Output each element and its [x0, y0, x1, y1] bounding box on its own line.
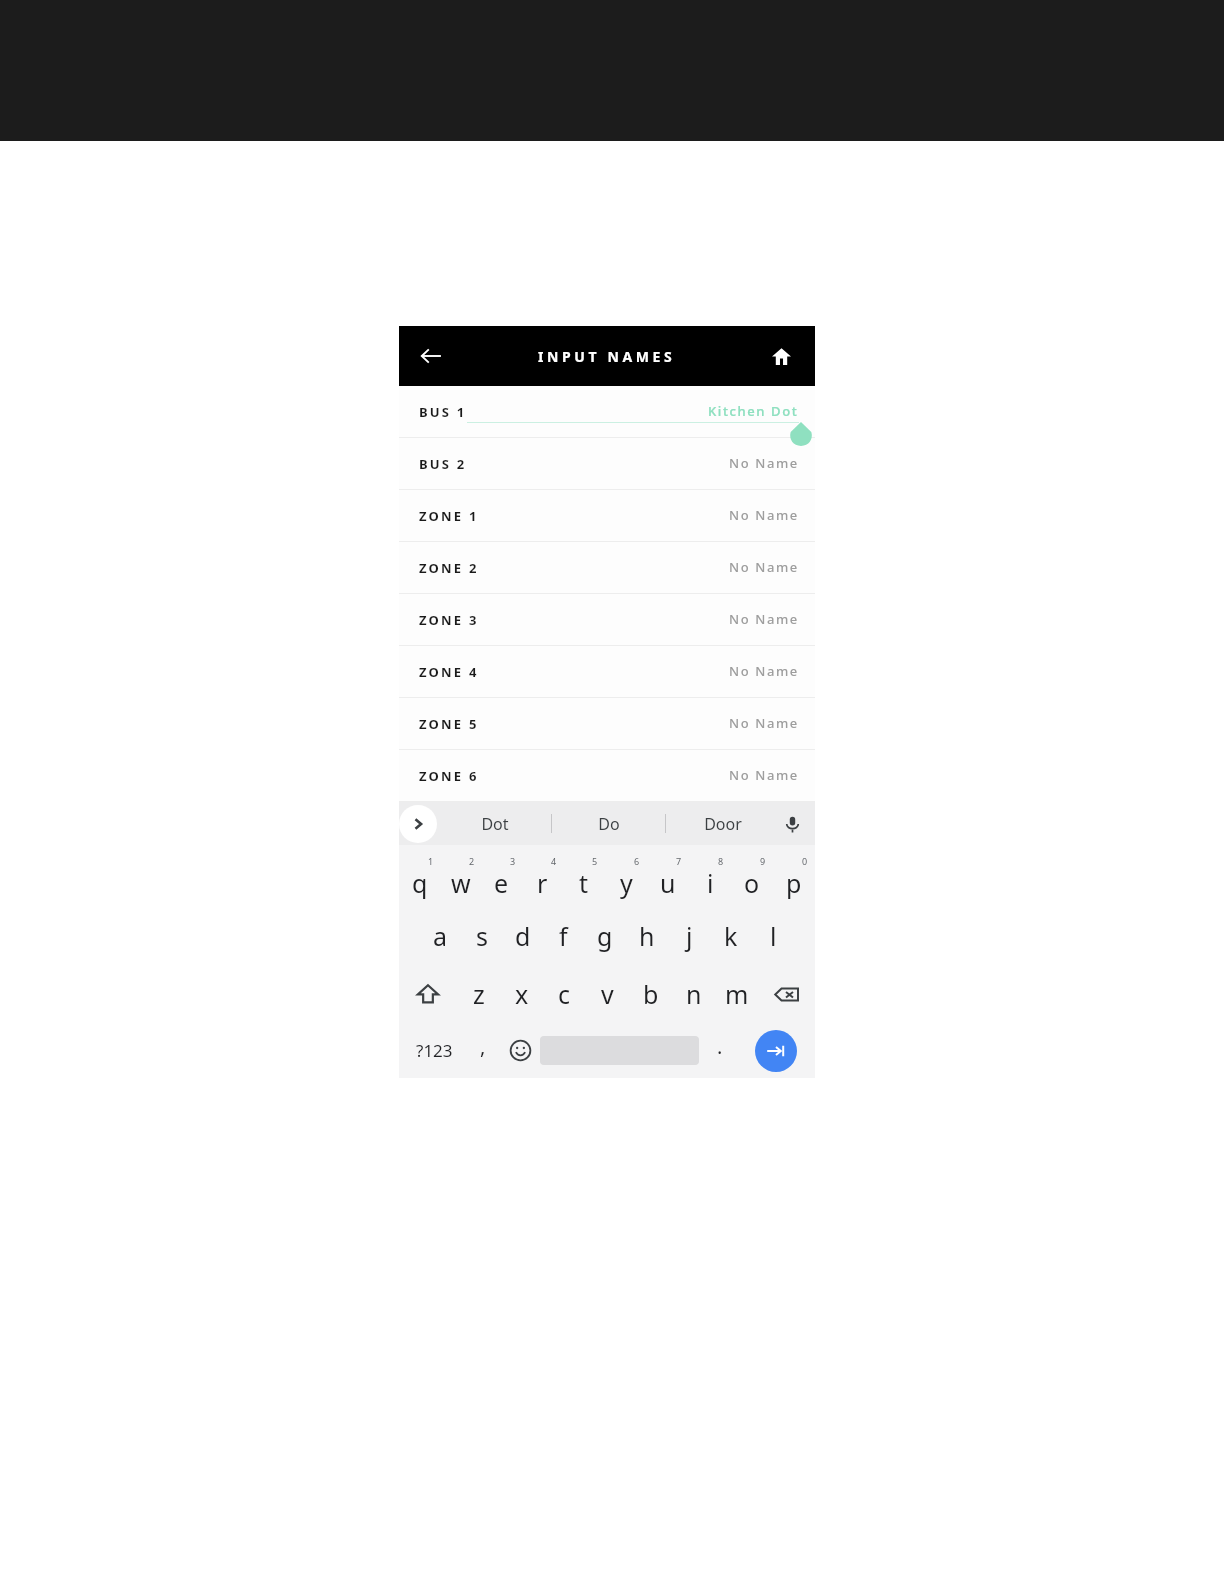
staticText: b [643, 977, 659, 1011]
staticText: ZONE 2 [419, 559, 479, 577]
staticText: k [724, 919, 738, 953]
staticText: ZONE 1 [419, 507, 479, 525]
button[interactable]: ZONE 4 [399, 646, 815, 698]
staticText: m [725, 977, 749, 1011]
staticText: 8 [718, 855, 724, 867]
button[interactable]: Dot [439, 802, 551, 845]
button[interactable]: 5 [563, 851, 605, 907]
staticText: s [476, 919, 488, 953]
staticText: Door [704, 813, 742, 835]
staticText: 4 [551, 855, 557, 867]
staticText: r [537, 866, 548, 900]
button[interactable]: ZONE 6 [399, 750, 815, 802]
staticText: No Name [729, 454, 799, 472]
button[interactable]: . [699, 1023, 741, 1078]
button[interactable]: b [629, 965, 672, 1023]
staticText: BUS 1 [419, 403, 467, 421]
staticText: l [770, 919, 777, 953]
staticText: 7 [676, 855, 682, 867]
button[interactable]: 3 [481, 851, 522, 907]
staticText: BUS 2 [419, 455, 467, 473]
staticText: c [558, 977, 571, 1011]
staticText: No Name [729, 558, 799, 576]
staticText: 3 [510, 855, 516, 867]
button[interactable]: s [461, 907, 502, 965]
button[interactable]: ?123 [403, 1023, 465, 1078]
staticText: p [786, 866, 802, 900]
button[interactable]: 4 [522, 851, 563, 907]
button[interactable]: , [465, 1023, 500, 1078]
staticText: Dot [481, 813, 509, 835]
button[interactable]: n [672, 965, 715, 1023]
button[interactable]: ZONE 2 [399, 542, 815, 594]
staticText: h [639, 919, 655, 953]
button[interactable]: ZONE 5 [399, 698, 815, 750]
staticText: z [473, 977, 485, 1011]
button[interactable]: c [543, 965, 586, 1023]
staticText: No Name [729, 766, 799, 784]
staticText: e [494, 866, 509, 900]
staticText: 2 [469, 855, 475, 867]
staticText: y [620, 866, 633, 900]
button[interactable]: ZONE 1 [399, 490, 815, 542]
button[interactable]: v [586, 965, 629, 1023]
button[interactable]: d [502, 907, 543, 965]
button[interactable]: g [584, 907, 626, 965]
button[interactable]: h [626, 907, 668, 965]
staticText: w [451, 866, 471, 900]
staticText: No Name [729, 662, 799, 680]
staticText: ZONE 4 [419, 663, 479, 681]
staticText: j [686, 919, 693, 953]
staticText: No Name [729, 714, 799, 732]
staticText: 0 [802, 855, 808, 867]
button[interactable]: Do [552, 802, 665, 845]
button[interactable]: Back [409, 334, 453, 378]
button[interactable]: f [543, 907, 584, 965]
staticText: i [707, 866, 714, 900]
button[interactable]: More suggestions [399, 805, 437, 843]
button[interactable]: BUS 1 [399, 386, 815, 438]
button[interactable]: l [752, 907, 794, 965]
button[interactable]: a [420, 907, 461, 965]
staticText: f [559, 919, 568, 953]
button[interactable]: 9 [731, 851, 773, 907]
button[interactable]: 8 [689, 851, 731, 907]
staticText: x [515, 977, 529, 1011]
staticText: 5 [592, 855, 598, 867]
button[interactable]: 0 [773, 851, 815, 907]
button[interactable]: 6 [605, 851, 647, 907]
button[interactable]: 7 [647, 851, 689, 907]
button[interactable]: z [457, 965, 500, 1023]
button[interactable]: m [715, 965, 758, 1023]
button[interactable]: Voice input [775, 807, 809, 841]
staticText: , [480, 1033, 486, 1060]
staticText: No Name [729, 506, 799, 524]
button[interactable]: k [710, 907, 752, 965]
button[interactable]: j [668, 907, 710, 965]
staticText: . [717, 1033, 723, 1060]
button[interactable]: BUS 2 [399, 438, 815, 490]
staticText: o [744, 866, 760, 900]
button[interactable]: 1 [399, 851, 440, 907]
button[interactable]: 2 [440, 851, 481, 907]
button[interactable]: Emoji [500, 1023, 540, 1078]
staticText: d [515, 919, 531, 953]
staticText: q [412, 866, 428, 900]
staticText: ZONE 3 [419, 611, 479, 629]
staticText: 9 [760, 855, 766, 867]
staticText: No Name [729, 610, 799, 628]
staticText: ?123 [416, 1039, 453, 1062]
button[interactable]: x [500, 965, 543, 1023]
button[interactable]: Backspace [758, 965, 815, 1023]
staticText: Do [598, 813, 620, 835]
staticText: u [660, 866, 676, 900]
button[interactable]: ZONE 3 [399, 594, 815, 646]
button[interactable]: Home [759, 334, 803, 378]
staticText: ZONE 6 [419, 767, 479, 785]
staticText: 6 [634, 855, 640, 867]
staticText: v [601, 977, 614, 1011]
button[interactable]: Enter [755, 1030, 797, 1072]
button[interactable]: Shift [399, 965, 457, 1023]
button[interactable]: Door [666, 802, 779, 845]
